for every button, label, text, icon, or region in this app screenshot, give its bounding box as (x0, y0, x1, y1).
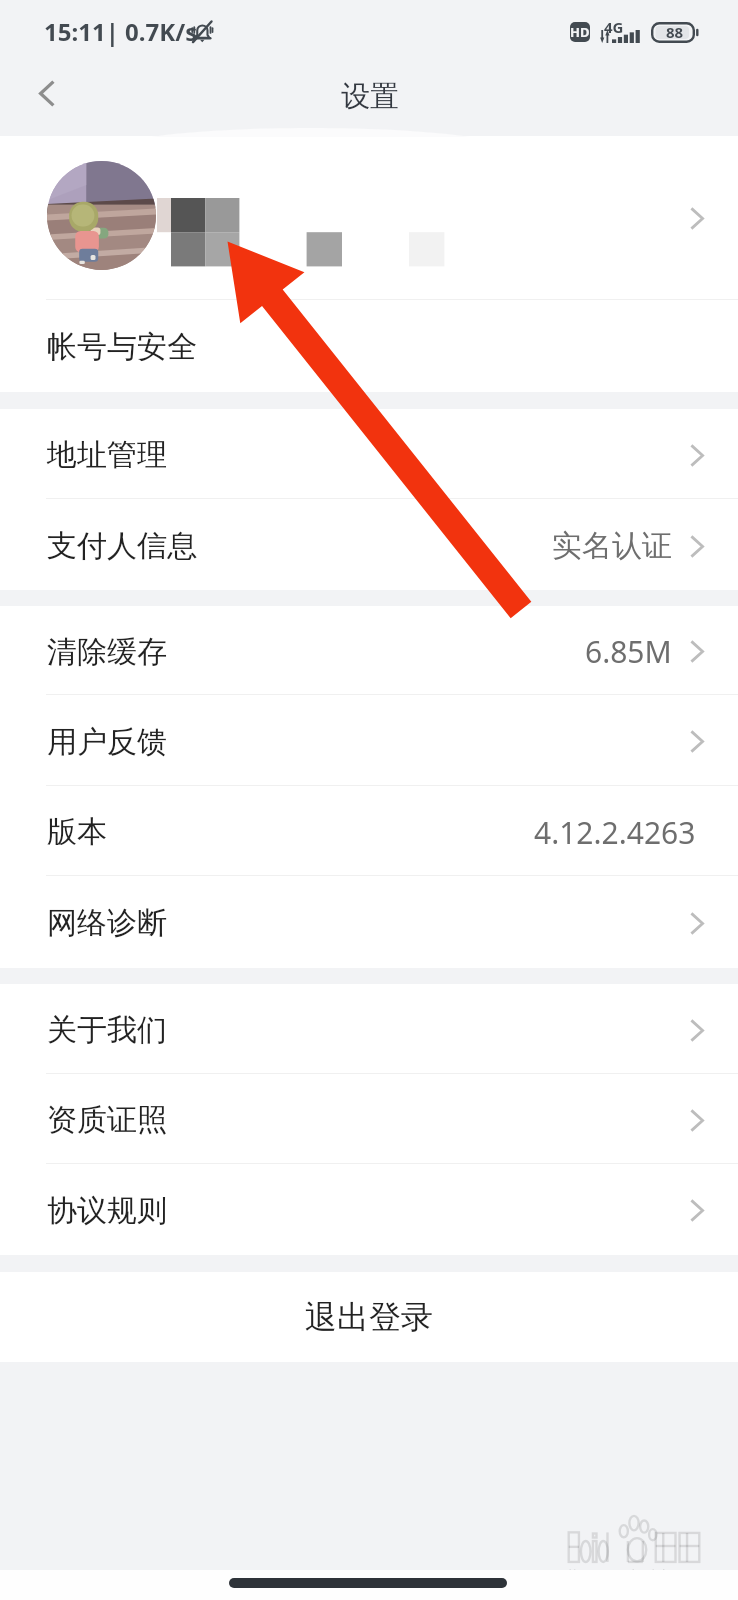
staticText: 地址管理 (47, 436, 167, 474)
staticText: 关于我们 (47, 1011, 167, 1049)
button[interactable]: 网络诊断 (0, 876, 738, 968)
staticText: jingyan.baidu.com (568, 1563, 716, 1586)
staticText: 4G (604, 17, 624, 37)
staticText: 实名认证 (552, 527, 672, 565)
staticText: 清除缓存 (47, 633, 167, 671)
button[interactable]: 资质证照 (0, 1074, 738, 1164)
button[interactable]: 用户反馈 (0, 695, 738, 786)
staticText: 资质证照 (47, 1101, 167, 1139)
staticText: 6.85M (585, 631, 672, 672)
button[interactable]: 地址管理 (0, 409, 738, 499)
staticText: 15:11| 0.7K/s (44, 15, 198, 48)
button[interactable]: 清除缓存 (0, 606, 738, 695)
button[interactable]: 支付人信息 (0, 499, 738, 590)
staticText: 4.12.2.4263 (534, 812, 696, 853)
staticText: 88 (666, 22, 684, 42)
staticText: 协议规则 (47, 1192, 167, 1230)
button[interactable]: Back (10, 56, 84, 130)
button[interactable]: 帐号与安全 (0, 300, 738, 392)
button[interactable]: 退出登录 (0, 1272, 738, 1362)
staticText: 退出登录 (305, 1297, 433, 1337)
button[interactable]: 协议规则 (0, 1164, 738, 1255)
button[interactable]: 版本 (0, 786, 738, 876)
staticText: 支付人信息 (47, 527, 197, 565)
button[interactable]: 关于我们 (0, 984, 738, 1074)
button[interactable] (0, 136, 738, 300)
staticText: 版本 (47, 813, 107, 851)
staticText: HD (570, 23, 590, 41)
staticText: 设置 (341, 78, 399, 115)
staticText: 用户反馈 (47, 723, 167, 761)
staticText: 帐号与安全 (47, 328, 197, 366)
staticText: 网络诊断 (47, 904, 167, 942)
